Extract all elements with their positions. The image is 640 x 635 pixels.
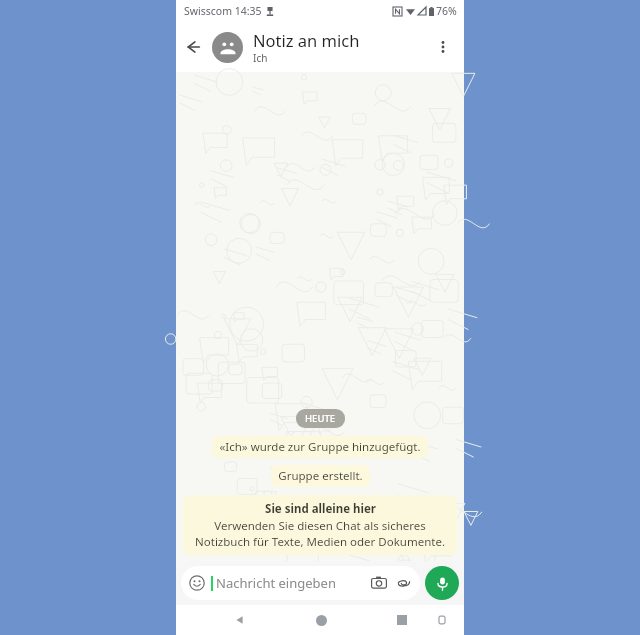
staticText: HEUTE <box>305 412 336 425</box>
button[interactable]: Notiz an mich <box>253 29 426 65</box>
button[interactable]: «Ich» wurde zur Gruppe hinzugefügt. <box>212 436 428 458</box>
button[interactable]: Back <box>176 30 210 64</box>
staticText: Notiz an mich <box>253 29 360 51</box>
staticText: Sie sind alleine hier <box>265 501 376 517</box>
staticText: Verwenden Sie diesen Chat als sicheres N… <box>191 518 449 549</box>
button[interactable]: Attach <box>396 575 412 591</box>
button[interactable]: More options <box>426 30 460 64</box>
staticText: 76% <box>436 4 457 18</box>
button[interactable]: Recents <box>388 606 416 634</box>
button[interactable]: Group photo <box>212 32 243 63</box>
button[interactable]: Home <box>307 606 335 634</box>
staticText: Nachricht eingeben <box>216 574 336 592</box>
button[interactable]: Back <box>226 606 254 634</box>
staticText: Swisscom 14:35 <box>184 4 262 18</box>
staticText: «Ich» wurde zur Gruppe hinzugefügt. <box>219 439 421 455</box>
staticText: Gruppe erstellt. <box>278 468 363 484</box>
other: Emoji <box>189 575 205 591</box>
button[interactable]: Sie sind alleine hier <box>183 495 457 555</box>
button[interactable]: Gruppe erstellt. <box>271 465 370 487</box>
button[interactable]: Rotate screen <box>430 608 454 632</box>
button[interactable]: Camera <box>371 575 387 591</box>
button[interactable]: Voice message <box>425 566 459 600</box>
button[interactable]: HEUTE <box>296 409 345 428</box>
staticText: Ich <box>253 51 268 65</box>
button[interactable]: Emoji <box>181 566 420 600</box>
